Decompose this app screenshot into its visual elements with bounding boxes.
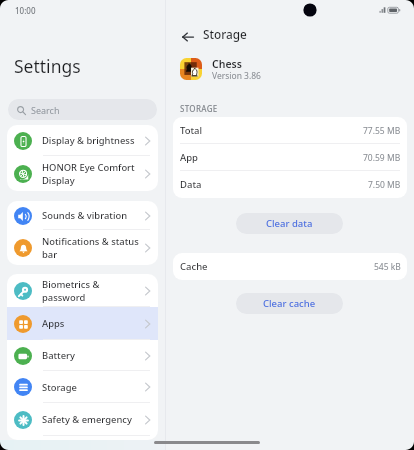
staticText: Data xyxy=(180,178,368,191)
staticText: Storage xyxy=(42,381,145,394)
button[interactable]: HONOR Eye Comfort Display xyxy=(7,156,158,191)
staticText: 10:00 xyxy=(15,5,36,16)
staticText: STORAGE xyxy=(180,103,218,114)
staticText: Biometrics & password xyxy=(42,278,145,304)
staticText: Chess xyxy=(212,57,242,71)
staticText: Battery xyxy=(42,349,145,362)
button[interactable]: Clear cache xyxy=(236,293,343,314)
button[interactable]: Display & brightness xyxy=(7,125,158,156)
button[interactable]: Back xyxy=(178,27,198,47)
button[interactable]: App xyxy=(173,144,407,171)
button[interactable]: Clear data xyxy=(236,213,343,234)
staticText: Display & brightness xyxy=(42,134,145,147)
button[interactable]: Total xyxy=(173,117,407,144)
staticText: Cache xyxy=(180,260,374,273)
staticText: Apps xyxy=(42,317,145,330)
button[interactable]: Safety & emergency xyxy=(7,403,158,436)
staticText: 77.55 MB xyxy=(363,125,401,137)
button[interactable]: Search xyxy=(8,99,157,120)
button[interactable]: Storage xyxy=(7,371,158,403)
staticText: Notifications & status bar xyxy=(42,235,145,261)
staticText: Total xyxy=(180,124,363,137)
button[interactable]: Sounds & vibration xyxy=(7,201,158,230)
staticText: Clear data xyxy=(266,217,313,230)
button[interactable]: Notifications & status bar xyxy=(7,230,158,265)
staticText: App xyxy=(180,151,363,164)
staticText: HONOR Eye Comfort Display xyxy=(42,161,145,187)
staticText: 545 kB xyxy=(374,261,401,273)
staticText: Settings xyxy=(14,54,81,78)
button[interactable]: Battery xyxy=(7,340,158,371)
staticText: 7.50 MB xyxy=(368,179,401,191)
staticText: Sounds & vibration xyxy=(42,209,145,222)
button[interactable]: Data xyxy=(173,171,407,198)
button[interactable]: Apps xyxy=(7,307,158,340)
staticText: Search xyxy=(31,104,60,116)
button[interactable]: Cache xyxy=(173,253,407,280)
staticText: 70.59 MB xyxy=(363,152,401,164)
staticText: Version 3.86 xyxy=(212,70,261,82)
staticText: Clear cache xyxy=(263,297,316,310)
staticText: Safety & emergency xyxy=(42,413,145,426)
staticText: Storage xyxy=(203,26,247,42)
button[interactable]: Biometrics & password xyxy=(7,274,158,307)
